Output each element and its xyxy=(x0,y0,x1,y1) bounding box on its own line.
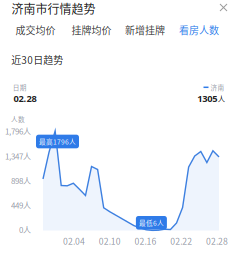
staticText: 02.28 xyxy=(13,92,36,105)
staticText: 02.04 xyxy=(63,235,85,247)
staticText: 人数 xyxy=(11,114,25,124)
staticText: 近30日趋势 xyxy=(11,52,63,67)
staticText: 挂牌均价 xyxy=(71,23,111,37)
staticText: 02.28 xyxy=(206,235,228,247)
staticText: 02.22 xyxy=(170,235,192,247)
staticText: 人 xyxy=(218,93,225,104)
staticText: 898人 xyxy=(11,175,31,186)
button[interactable]: 成交均价 xyxy=(10,20,62,40)
staticText: 02.10 xyxy=(99,235,121,247)
button[interactable]: Close xyxy=(213,0,233,17)
staticText: 最低6人 xyxy=(139,218,164,228)
button[interactable]: 看房人数 xyxy=(173,20,225,40)
staticText: 日期 xyxy=(13,82,27,92)
staticText: 02.16 xyxy=(134,235,156,247)
staticText: 新增挂牌 xyxy=(125,23,165,37)
staticText: 成交均价 xyxy=(16,23,56,37)
staticText: 看房人数 xyxy=(179,23,219,37)
staticText: 1305 xyxy=(197,92,217,105)
staticText: 0人 xyxy=(19,224,31,235)
staticText: 1,796人 xyxy=(5,125,31,137)
button[interactable]: 新增挂牌 xyxy=(119,20,171,40)
staticText: 1,347人 xyxy=(5,150,31,162)
staticText: 济南市行情趋势 xyxy=(11,0,95,17)
button[interactable]: 挂牌均价 xyxy=(65,20,117,40)
staticText: 最高1796人 xyxy=(39,137,76,146)
staticText: 449人 xyxy=(11,199,31,211)
staticText: 济南 xyxy=(210,82,224,92)
